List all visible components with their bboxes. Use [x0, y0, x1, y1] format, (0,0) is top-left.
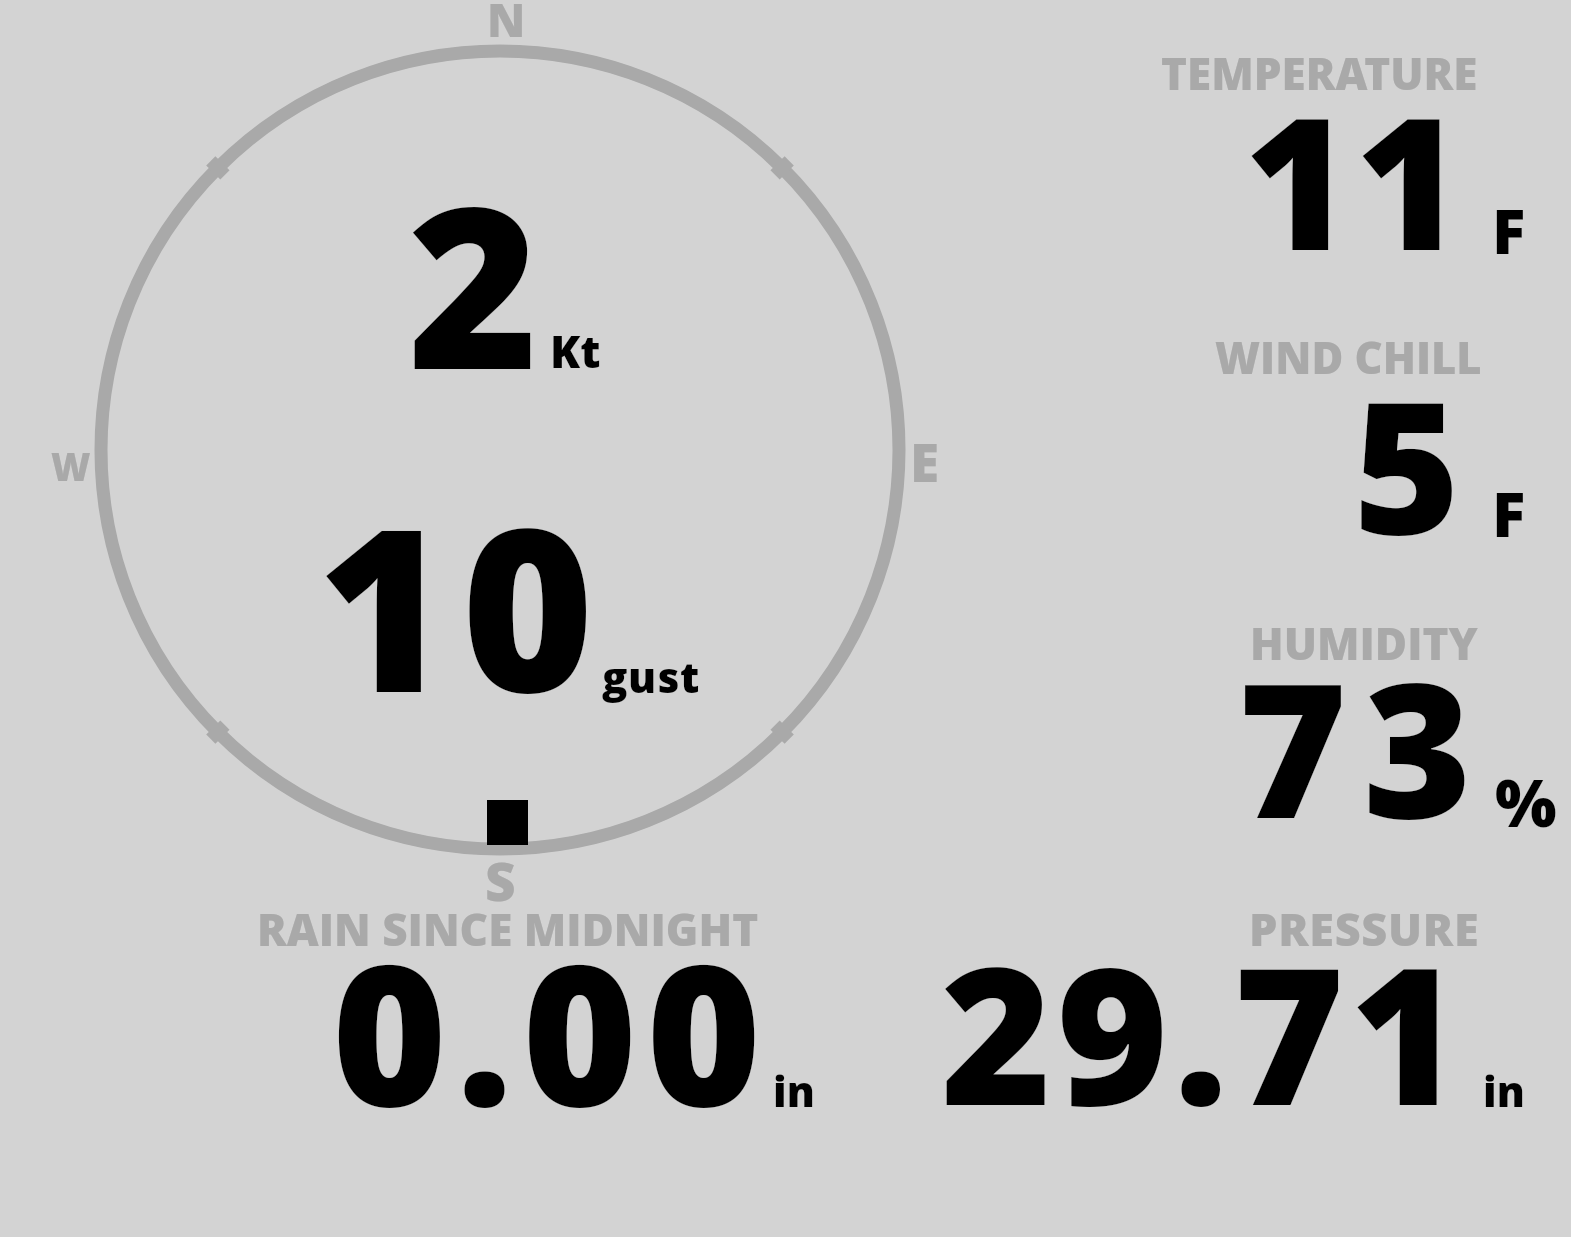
button[interactable]: Rain since midnight 0.00 inches [200, 880, 840, 1130]
button[interactable]: Wind compass [20, 0, 920, 900]
staticText: % [1495, 758, 1557, 847]
staticText: 5 [1353, 338, 1461, 587]
staticText: HUMIDITY [1250, 613, 1478, 673]
staticText: F [1492, 471, 1526, 555]
staticText: 73 [1238, 619, 1488, 869]
staticText: 2 [408, 131, 539, 435]
staticText: F [1492, 188, 1526, 272]
staticText: TEMPERATURE [1161, 43, 1478, 103]
button[interactable]: Temperature 11 degrees Fahrenheit [1100, 30, 1571, 280]
staticText: 0.00 [332, 897, 771, 1147]
button[interactable]: Humidity 73 percent [1100, 600, 1571, 850]
staticText: gust [602, 648, 700, 705]
staticText: 11 [1244, 54, 1467, 303]
staticText: S [485, 844, 516, 916]
staticText: PRESSURE [1249, 898, 1480, 959]
staticText: W [51, 440, 91, 492]
staticText: 29.71 [941, 903, 1467, 1153]
button[interactable]: Wind chill 5 degrees Fahrenheit [1100, 310, 1571, 570]
staticText: Kt [550, 321, 601, 381]
staticText: 10 [317, 450, 606, 758]
staticText: WIND CHILL [1215, 328, 1482, 387]
staticText: in [1483, 1062, 1525, 1119]
staticText: RAIN SINCE MIDNIGHT [257, 899, 759, 959]
staticText: in [773, 1062, 815, 1119]
staticText: E [910, 425, 940, 497]
staticText: N [487, 0, 526, 51]
button[interactable]: Pressure 29.71 inches [900, 880, 1571, 1130]
